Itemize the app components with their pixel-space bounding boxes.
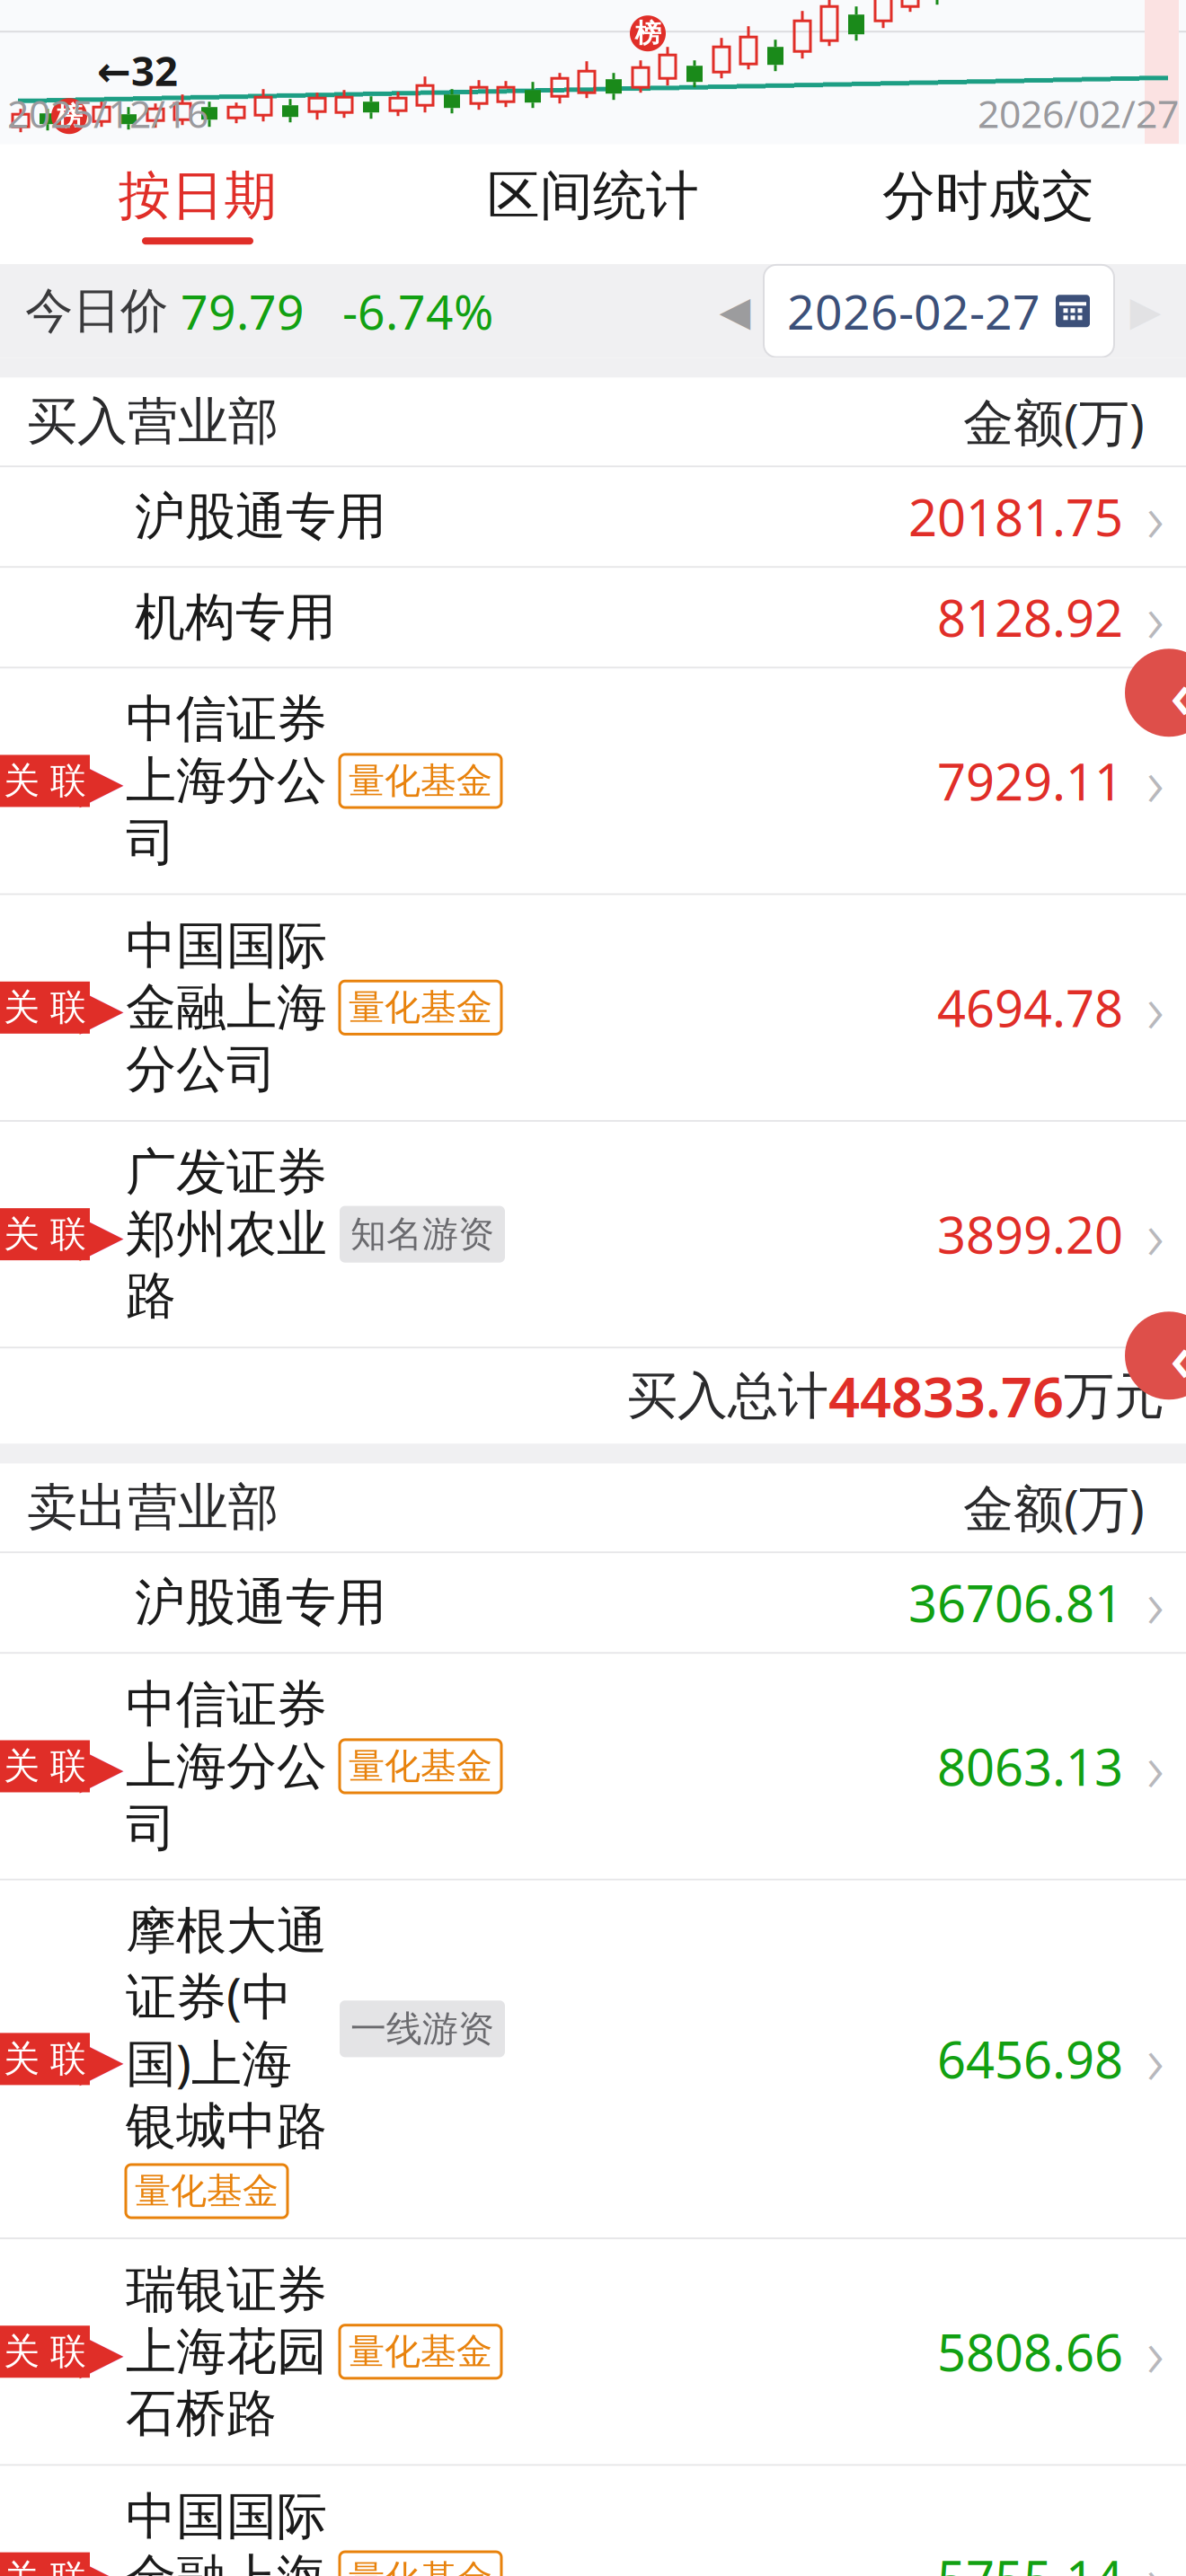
- button[interactable]: ▶: [0, 1654, 1186, 1880]
- staticText: ▶: [80, 2026, 124, 2092]
- staticText: 中信证券上海分公司: [126, 1674, 327, 1859]
- staticText: ›: [1146, 1190, 1164, 1279]
- staticText: ›: [1146, 2534, 1164, 2576]
- staticText: 金额(万): [963, 388, 1145, 455]
- button[interactable]: ▶: [0, 1122, 1186, 1348]
- staticText: 20181.75: [908, 483, 1123, 550]
- staticText: ▶: [80, 1202, 124, 1267]
- staticText: ←32: [97, 43, 178, 97]
- staticText: ◀: [719, 288, 751, 334]
- staticText: 按日期: [118, 164, 277, 228]
- staticText: -6.74%: [305, 279, 493, 343]
- staticText: ›: [1146, 1722, 1164, 1811]
- staticText: 量化基金: [349, 759, 492, 803]
- staticText: ‹: [1170, 1311, 1186, 1400]
- staticText: 8128.92: [937, 584, 1123, 651]
- staticText: ▶: [80, 2546, 124, 2576]
- button[interactable]: 沪股通专用: [0, 1553, 1186, 1654]
- staticText: ▶: [80, 748, 124, 813]
- staticText: 关 联: [4, 1744, 86, 1788]
- staticText: 36706.81: [908, 1569, 1123, 1636]
- staticText: 中信证券上海分公司: [126, 688, 327, 874]
- staticText: 6456.98: [937, 2026, 1123, 2092]
- staticText: 区间统计: [487, 164, 699, 228]
- staticText: 79.79: [168, 279, 305, 343]
- staticText: ›: [1146, 573, 1164, 662]
- staticText: 7929.11: [937, 748, 1123, 814]
- staticText: 榜: [635, 17, 661, 50]
- staticText: 量化基金: [349, 1744, 492, 1788]
- staticText: 金额(万): [963, 1474, 1145, 1541]
- staticText: 今日价: [25, 282, 168, 340]
- button[interactable]: Expand panel: [1125, 1312, 1186, 1400]
- staticText: ›: [1146, 2014, 1164, 2104]
- staticText: 关 联: [4, 2556, 86, 2576]
- staticText: ›: [1146, 472, 1164, 561]
- button[interactable]: Expand panel: [1125, 649, 1186, 737]
- staticText: 沪股通专用: [135, 1572, 386, 1634]
- staticText: ›: [1146, 736, 1164, 826]
- button[interactable]: ▶: [0, 1881, 1186, 2239]
- staticText: 分时成交: [882, 164, 1094, 228]
- button[interactable]: 沪股通专用: [0, 467, 1186, 568]
- staticText: 关 联: [4, 759, 86, 803]
- staticText: 4694.78: [937, 974, 1123, 1041]
- staticText: 2025/12/16: [7, 88, 208, 139]
- staticText: 8063.13: [937, 1733, 1123, 1800]
- staticText: 量化基金: [349, 2556, 492, 2576]
- staticText: 量化基金: [349, 985, 492, 1030]
- button[interactable]: ▶: [0, 895, 1186, 1122]
- button[interactable]: ▶: [0, 2466, 1186, 2576]
- staticText: ›: [1146, 1558, 1164, 1647]
- staticText: ▶: [80, 975, 124, 1040]
- button[interactable]: ▶: [0, 2239, 1186, 2466]
- staticText: 瑞银证券上海花园石桥路: [126, 2259, 327, 2444]
- staticText: 榜: [56, 100, 82, 132]
- staticText: 5808.66: [937, 2318, 1123, 2385]
- staticText: ▶: [80, 1734, 124, 1799]
- staticText: 卖出营业部: [27, 1477, 279, 1538]
- staticText: ‹: [1170, 648, 1186, 737]
- button[interactable]: Previous day: [706, 275, 764, 347]
- staticText: 量化基金: [135, 2169, 279, 2213]
- staticText: ›: [1146, 2307, 1164, 2396]
- staticText: 关 联: [4, 2037, 86, 2081]
- staticText: 一线游资: [350, 2007, 494, 2051]
- staticText: 中国国际金融上海分公司: [126, 915, 327, 1100]
- button[interactable]: 按日期: [0, 144, 395, 264]
- staticText: ▶: [1130, 288, 1161, 334]
- button[interactable]: 2026-02-27: [764, 265, 1114, 357]
- staticText: 量化基金: [349, 2330, 492, 2374]
- staticText: 万元: [1064, 1365, 1164, 1427]
- staticText: 关 联: [4, 2330, 86, 2374]
- staticText: 摩根大通证券(中国)上海银城中路: [126, 1900, 327, 2157]
- button[interactable]: ▶: [0, 669, 1186, 895]
- staticText: 广发证券郑州农业路: [126, 1142, 327, 1327]
- staticText: 买入总计: [627, 1365, 828, 1427]
- staticText: 买入营业部: [27, 391, 279, 452]
- button[interactable]: 分时成交: [791, 144, 1186, 264]
- staticText: 机构专用: [135, 586, 336, 648]
- button[interactable]: 区间统计: [395, 144, 791, 264]
- staticText: ▶: [80, 2319, 124, 2384]
- staticText: 2026-02-27: [787, 279, 1040, 343]
- staticText: 知名游资: [350, 1212, 494, 1256]
- staticText: 沪股通专用: [135, 486, 386, 548]
- staticText: 关 联: [4, 985, 86, 1030]
- button[interactable]: Next day: [1114, 275, 1177, 347]
- staticText: 5755.14: [937, 2545, 1123, 2576]
- button[interactable]: 机构专用: [0, 568, 1186, 669]
- staticText: 3899.20: [937, 1201, 1123, 1268]
- staticText: 44833.76: [828, 1359, 1064, 1433]
- staticText: 中国国际金融上海分公司: [126, 2486, 327, 2576]
- staticText: 关 联: [4, 1212, 86, 1256]
- staticText: 2026/02/27: [978, 88, 1179, 139]
- staticText: ›: [1146, 963, 1164, 1052]
